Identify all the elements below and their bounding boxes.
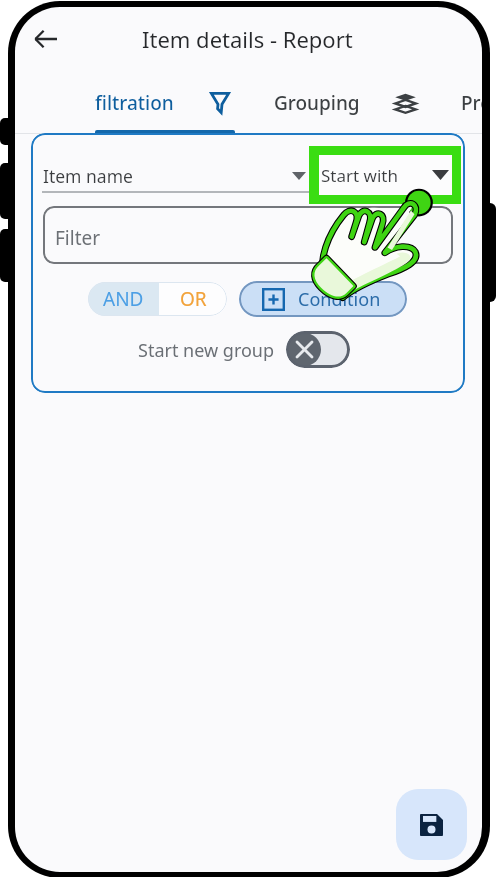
staticText: OR xyxy=(180,286,207,312)
staticText: Grouping xyxy=(274,90,360,116)
staticText: Start new group xyxy=(138,338,275,363)
button[interactable]: Condition xyxy=(239,281,407,317)
button[interactable]: Grouping xyxy=(268,79,423,126)
staticText: Start with xyxy=(321,164,398,187)
button[interactable]: Back xyxy=(24,17,68,61)
button[interactable]: Save xyxy=(396,789,467,860)
button[interactable]: Filter xyxy=(43,206,453,264)
button[interactable]: OR xyxy=(159,282,227,316)
staticText: filtration xyxy=(95,90,174,116)
button[interactable]: AND xyxy=(88,282,159,316)
button[interactable]: Item name xyxy=(43,163,308,189)
button[interactable]: filtration xyxy=(89,79,236,126)
staticText: Pre xyxy=(461,90,482,116)
staticText: Condition xyxy=(298,287,381,312)
button[interactable]: Start new group toggle xyxy=(286,331,350,368)
staticText: Item details - Report xyxy=(142,24,353,54)
button[interactable]: Start with xyxy=(319,155,452,195)
staticText: Filter xyxy=(55,225,101,251)
staticText: Item name xyxy=(43,164,133,188)
staticText: AND xyxy=(103,286,144,312)
